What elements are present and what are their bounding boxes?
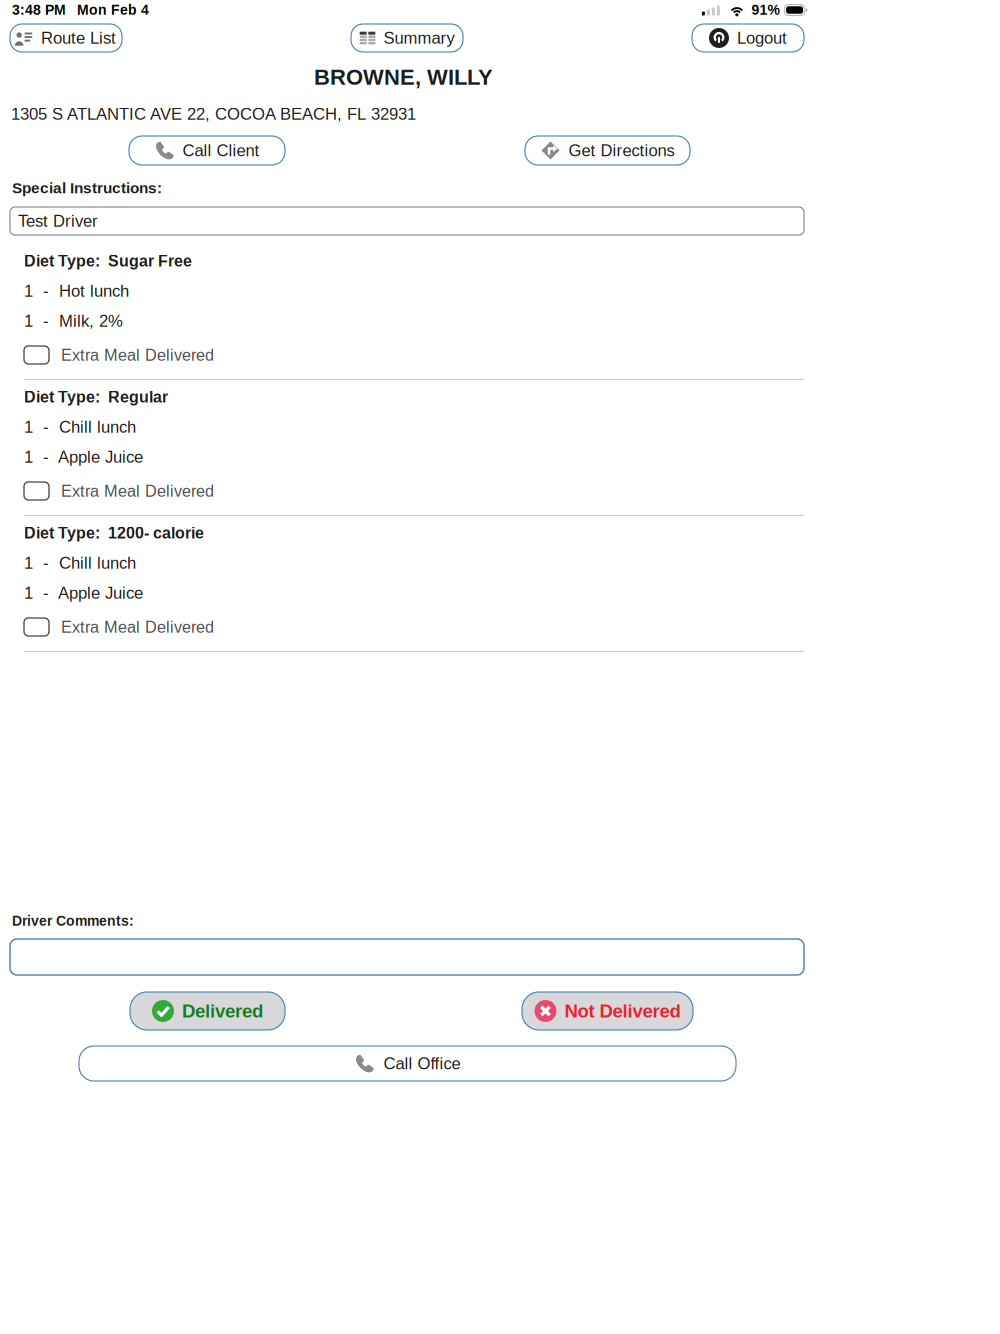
staticText: 1305 S ATLANTIC AVE 22, COCOA BEACH, FL … (11, 105, 416, 123)
staticText: Extra Meal Delivered (61, 618, 214, 636)
staticText: Get Directions (568, 141, 674, 160)
staticText: Test Driver (18, 212, 98, 230)
button[interactable]: Delivered (130, 992, 285, 1030)
button[interactable]: Logout (692, 24, 804, 52)
button[interactable]: Get Directions (525, 136, 690, 165)
button[interactable]: Call Client (129, 136, 285, 165)
staticText: 1 - Milk, 2% (24, 312, 123, 330)
staticText: Extra Meal Delivered (61, 482, 214, 500)
staticText: Mon Feb 4 (77, 2, 149, 18)
staticText: 1 - Apple Juice (24, 448, 143, 466)
staticText: Extra Meal Delivered (61, 346, 214, 364)
staticText: 3:48 PM (12, 2, 66, 18)
staticText: Diet Type: Regular (24, 388, 168, 406)
staticText: Not Delivered (564, 1001, 680, 1021)
staticText: Summary (383, 29, 454, 47)
staticText: 1 - Chill lunch (24, 418, 136, 436)
staticText: Diet Type: 1200- calorie (24, 524, 204, 542)
staticText: BROWNE, WILLY (314, 65, 493, 89)
button[interactable]: Extra Meal Delivered (24, 617, 804, 637)
staticText: Call Office (383, 1054, 460, 1073)
staticText: 1 - Apple Juice (24, 584, 143, 602)
staticText: Route List (41, 29, 116, 47)
button[interactable]: Extra Meal Delivered (24, 345, 804, 365)
staticText: 1 - Chill lunch (24, 554, 136, 572)
button[interactable]: Call Office (79, 1046, 736, 1081)
staticText: Driver Comments: (12, 913, 134, 929)
staticText: Special Instructions: (12, 179, 162, 196)
staticText: Call Client (182, 141, 259, 160)
staticText: Diet Type: Sugar Free (24, 252, 192, 270)
staticText: 91% (751, 2, 779, 18)
button[interactable]: Route List (10, 24, 122, 52)
staticText: 1 - Hot lunch (24, 282, 129, 300)
button[interactable]: Extra Meal Delivered (24, 481, 804, 501)
staticText: Logout (737, 29, 787, 47)
button[interactable]: Special Instructions (10, 207, 804, 235)
button[interactable]: Driver Comments (10, 939, 804, 975)
button[interactable]: Not Delivered (522, 992, 693, 1030)
button[interactable]: Summary (351, 24, 463, 52)
staticText: Delivered (182, 1001, 263, 1021)
